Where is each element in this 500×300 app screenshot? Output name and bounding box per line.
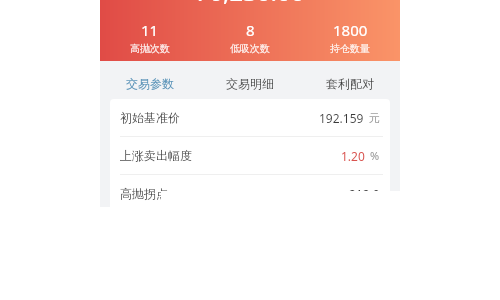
staticText: 低吸次数 bbox=[230, 42, 270, 55]
staticText: 高抛拐点 bbox=[120, 186, 161, 201]
button[interactable]: 高抛拐点 bbox=[110, 175, 390, 191]
button[interactable]: 1800 bbox=[300, 20, 400, 55]
button[interactable]: 交易参数 bbox=[100, 65, 200, 102]
staticText: 70,230.00 bbox=[100, 0, 400, 8]
button[interactable]: 高抛拐点 bbox=[110, 175, 161, 207]
staticText: 初始基准价 bbox=[120, 110, 180, 125]
staticText: 11 bbox=[141, 20, 159, 40]
staticText: 元 bbox=[369, 111, 380, 125]
staticText: 1.20 bbox=[341, 148, 365, 164]
button[interactable]: 上涨卖出幅度 bbox=[110, 137, 390, 175]
button[interactable]: 上涨卖出幅度 bbox=[110, 137, 161, 175]
button[interactable]: 11 bbox=[100, 20, 161, 55]
button[interactable]: 初始基准价 bbox=[110, 99, 161, 137]
staticText: 持仓数量 bbox=[330, 42, 370, 55]
staticText: 上涨卖出幅度 bbox=[120, 148, 161, 163]
staticText: 高抛次数 bbox=[130, 42, 161, 55]
button[interactable]: 套利配对 bbox=[300, 65, 400, 102]
staticText: 70,230.00 bbox=[100, 0, 161, 8]
staticText: % bbox=[370, 148, 380, 163]
staticText: 交易明细 bbox=[226, 76, 274, 91]
staticText: 1800 bbox=[333, 20, 368, 40]
staticText: 8 bbox=[246, 20, 255, 40]
staticText: 高抛拐点 bbox=[120, 186, 168, 191]
staticText: 上涨卖出幅度 bbox=[120, 148, 192, 163]
button[interactable]: 交易参数 bbox=[100, 65, 161, 102]
staticText: 套利配对 bbox=[326, 76, 374, 91]
staticText: 交易参数 bbox=[126, 76, 174, 91]
button[interactable]: 11 bbox=[100, 20, 200, 55]
staticText: 192.159 bbox=[319, 110, 364, 126]
staticText: 高抛次数 bbox=[130, 42, 170, 55]
staticText: 11 bbox=[141, 20, 159, 40]
staticText: 交易参数 bbox=[126, 76, 161, 91]
staticText: 初始基准价 bbox=[120, 110, 161, 125]
staticText: 212.0 bbox=[349, 186, 380, 191]
button[interactable]: 交易明细 bbox=[200, 65, 300, 102]
button[interactable]: 8 bbox=[200, 20, 300, 55]
button[interactable]: 初始基准价 bbox=[110, 99, 390, 137]
